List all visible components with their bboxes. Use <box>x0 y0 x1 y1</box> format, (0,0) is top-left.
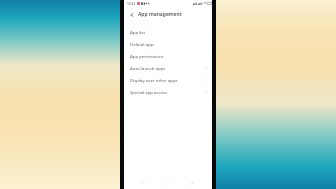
button[interactable]: App permissions <box>124 50 212 62</box>
staticText: App list <box>130 29 145 35</box>
staticText: Display over other apps <box>130 77 178 83</box>
button[interactable]: Special app access <box>124 86 212 98</box>
staticText: 10:43 <box>127 2 136 6</box>
button[interactable]: Display over other apps <box>124 74 212 86</box>
button[interactable]: Back <box>127 10 136 19</box>
staticText: App management <box>138 11 182 18</box>
staticText: Special app access <box>130 89 168 95</box>
staticText: Default app <box>130 41 154 47</box>
button[interactable]: Default app <box>124 38 212 50</box>
button[interactable]: Back <box>188 179 197 188</box>
staticText: App permissions <box>130 53 164 59</box>
button[interactable]: App list <box>124 26 212 38</box>
staticText: Auto-launch apps <box>130 65 166 71</box>
button[interactable]: Recent apps <box>139 179 148 188</box>
button[interactable]: Auto-launch apps <box>124 62 212 74</box>
